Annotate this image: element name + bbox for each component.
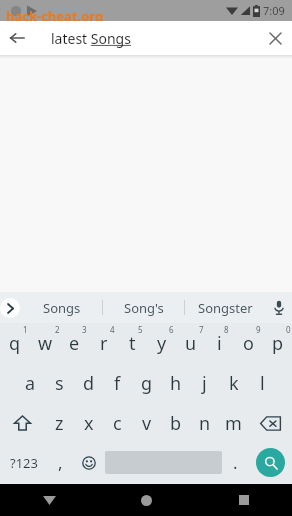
staticText: latest Songs — [51, 29, 131, 48]
staticText: i — [217, 331, 222, 356]
button[interactable]: b — [161, 403, 190, 443]
staticText: h — [170, 371, 182, 396]
staticText: s — [55, 371, 64, 396]
staticText: 9 — [256, 324, 261, 335]
button[interactable]: p — [263, 323, 292, 363]
button[interactable]: c — [103, 403, 132, 443]
button[interactable]: l — [248, 363, 277, 403]
staticText: o — [243, 331, 254, 356]
staticText: 3 — [82, 324, 87, 335]
button[interactable]: e — [60, 323, 89, 363]
staticText: 1 — [23, 324, 28, 335]
staticText: Songster — [198, 299, 253, 317]
staticText: u — [185, 331, 197, 356]
button[interactable]: a — [16, 363, 45, 403]
staticText: 4 — [110, 324, 115, 335]
staticText: p — [272, 331, 284, 356]
staticText: q — [9, 331, 21, 356]
staticText: k — [229, 371, 239, 396]
button[interactable]: q — [0, 323, 30, 363]
button[interactable]: s — [45, 363, 74, 403]
staticText: 0 — [286, 324, 291, 335]
staticText: hack-cheat.org — [6, 7, 104, 21]
button[interactable]: Back — [0, 484, 98, 516]
button[interactable]: g — [132, 363, 161, 403]
button[interactable]: i — [205, 323, 234, 363]
button[interactable]: r — [89, 323, 118, 363]
button[interactable]: Voice input — [266, 292, 292, 323]
button[interactable]: v — [132, 403, 161, 443]
button[interactable]: h — [161, 363, 190, 403]
button[interactable]: Clear — [258, 21, 292, 55]
staticText: g — [141, 371, 153, 396]
staticText: 2 — [55, 324, 60, 335]
button[interactable]: Emoji — [73, 443, 105, 482]
staticText: 7 — [199, 324, 204, 335]
staticText: n — [199, 411, 211, 436]
staticText: l — [260, 371, 265, 396]
button[interactable]: j — [190, 363, 219, 403]
staticText: Song's — [124, 299, 164, 317]
button[interactable]: Search — [256, 448, 285, 477]
staticText: . — [233, 451, 238, 474]
button[interactable]: u — [176, 323, 205, 363]
staticText: 6 — [169, 324, 174, 335]
button[interactable]: k — [219, 363, 248, 403]
staticText: 7:09 — [263, 3, 285, 18]
staticText: f — [114, 371, 121, 396]
button[interactable]: n — [190, 403, 219, 443]
button[interactable]: Expand suggestions — [0, 298, 20, 318]
button[interactable]: Backspace — [248, 403, 292, 443]
staticText: , — [58, 451, 63, 474]
button[interactable]: Shift — [0, 403, 45, 443]
button[interactable]: Songster — [185, 292, 266, 323]
button[interactable]: x — [74, 403, 103, 443]
button[interactable]: Period — [222, 443, 248, 482]
button[interactable]: Recents — [195, 484, 292, 516]
button[interactable]: ?123 — [0, 443, 47, 482]
button[interactable]: Back — [0, 21, 34, 55]
staticText: b — [170, 411, 182, 436]
staticText: t — [129, 331, 136, 356]
staticText: v — [142, 411, 152, 436]
button[interactable]: z — [45, 403, 74, 443]
staticText: 5 — [138, 324, 143, 335]
button[interactable]: m — [219, 403, 248, 443]
button[interactable]: Home — [98, 484, 195, 516]
staticText: a — [25, 371, 36, 396]
button[interactable]: t — [118, 323, 147, 363]
button[interactable]: Song's — [103, 292, 184, 323]
button[interactable]: y — [147, 323, 176, 363]
staticText: j — [202, 371, 207, 396]
staticText: ?123 — [10, 454, 38, 472]
button[interactable]: Songs — [22, 292, 102, 323]
staticText: x — [84, 411, 94, 436]
button[interactable]: Comma — [47, 443, 73, 482]
staticText: e — [69, 331, 80, 356]
staticText: c — [113, 411, 122, 436]
button[interactable]: f — [103, 363, 132, 403]
staticText: w — [38, 331, 53, 356]
staticText: m — [225, 411, 242, 436]
button[interactable]: d — [74, 363, 103, 403]
staticText: 8 — [224, 324, 229, 335]
staticText: r — [100, 331, 108, 356]
staticText: d — [83, 371, 95, 396]
staticText: y — [157, 331, 167, 356]
staticText: z — [55, 411, 64, 436]
staticText: Songs — [43, 299, 81, 317]
button[interactable]: w — [30, 323, 60, 363]
button[interactable]: o — [234, 323, 263, 363]
